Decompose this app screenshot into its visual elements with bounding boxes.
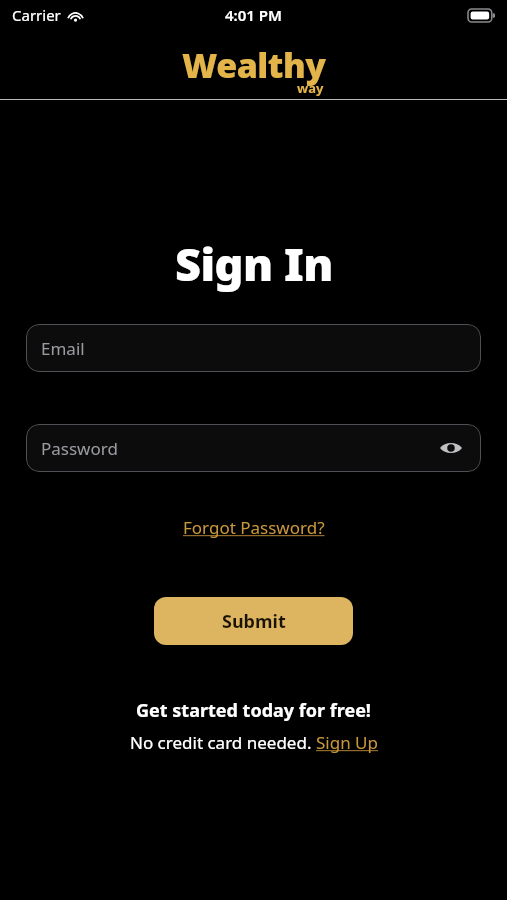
staticText: No credit card needed.: [130, 731, 316, 754]
button[interactable]: Password: [26, 424, 481, 472]
staticText: Get started today for free!: [136, 698, 371, 723]
staticText: Submit: [222, 609, 286, 634]
button[interactable]: Sign Up: [316, 731, 378, 754]
button[interactable]: Forgot Password?: [179, 514, 329, 541]
staticText: Email: [41, 337, 85, 360]
staticText: Sign Up: [316, 731, 378, 754]
staticText: Sign In: [175, 233, 333, 294]
staticText: Forgot Password?: [183, 516, 325, 539]
button[interactable]: Email: [26, 324, 481, 372]
button[interactable]: Submit: [154, 597, 353, 645]
button[interactable]: Show password: [436, 433, 466, 463]
staticText: Carrier: [12, 5, 61, 25]
staticText: 4:01 PM: [225, 5, 282, 25]
staticText: Wealthy: [182, 42, 326, 88]
staticText: way: [297, 79, 324, 97]
staticText: Password: [41, 437, 118, 460]
